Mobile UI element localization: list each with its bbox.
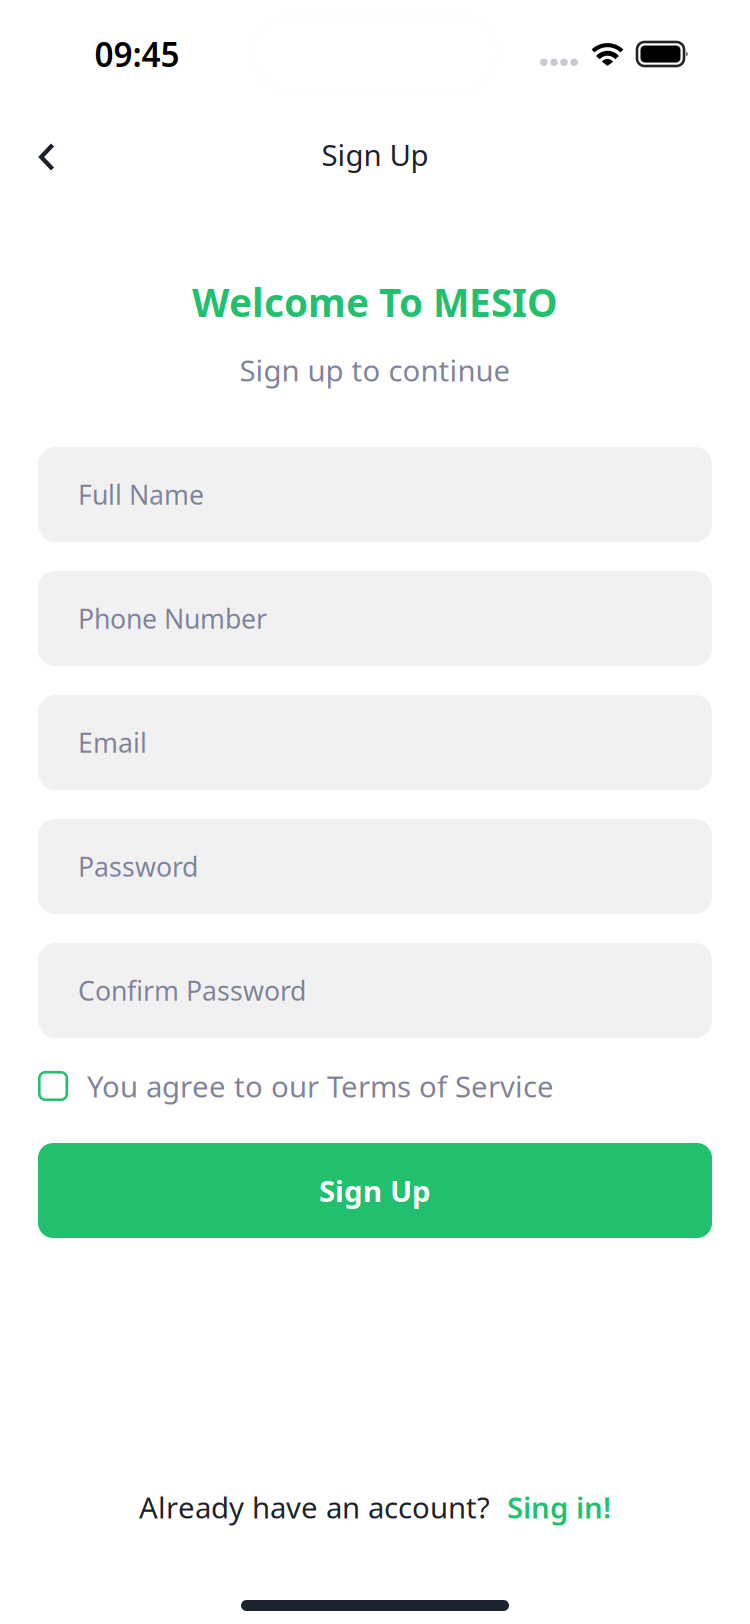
staticText: Already have an account? <box>139 1487 490 1526</box>
button[interactable]: Back <box>19 126 75 182</box>
button[interactable]: Phone Number <box>38 571 712 666</box>
button[interactable]: Email <box>38 695 712 790</box>
staticText: 09:45 <box>94 32 179 76</box>
staticText: Confirm Password <box>78 973 306 1008</box>
button[interactable]: Sign Up <box>38 1143 712 1238</box>
staticText: Welcome To MESIO <box>192 276 558 328</box>
staticText: Phone Number <box>78 601 267 636</box>
staticText: Email <box>78 725 147 760</box>
button[interactable]: Password <box>38 819 712 914</box>
staticText: Sign up to continue <box>239 350 510 389</box>
staticText: You agree to our Terms of Service <box>87 1066 554 1105</box>
staticText: Sign Up <box>321 135 428 174</box>
button[interactable]: You agree to our Terms of Service <box>0 1069 750 1103</box>
button[interactable]: Full Name <box>38 447 712 542</box>
staticText: Full Name <box>78 477 204 512</box>
staticText: Sign Up <box>319 1171 431 1210</box>
staticText: Sing in! <box>507 1487 611 1526</box>
button[interactable]: Confirm Password <box>38 943 712 1038</box>
staticText: Password <box>78 849 198 884</box>
button[interactable]: Already have an account? <box>139 1490 611 1524</box>
